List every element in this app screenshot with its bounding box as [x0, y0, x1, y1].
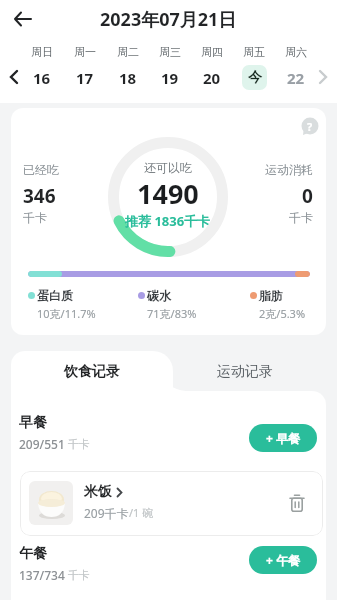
- staticText: 10克/11.7%: [37, 306, 96, 321]
- button[interactable]: 今: [242, 65, 267, 90]
- staticText: 运动记录: [217, 363, 273, 381]
- button[interactable]: 16: [33, 68, 51, 88]
- staticText: ?: [307, 119, 313, 134]
- staticText: 周三: [159, 45, 181, 59]
- staticText: 米饭: [84, 483, 112, 501]
- staticText: 周一: [74, 45, 96, 59]
- staticText: 碳水: [147, 288, 171, 303]
- staticText: 137/734: [19, 567, 65, 583]
- staticText: 运动消耗: [265, 162, 313, 177]
- staticText: 蛋白质: [37, 288, 73, 303]
- button[interactable]: 20: [203, 68, 221, 88]
- staticText: 209千卡: [84, 505, 129, 521]
- button[interactable]: 米饭: [20, 471, 323, 536]
- staticText: 1490: [137, 175, 199, 212]
- staticText: + 早餐: [266, 430, 300, 446]
- button[interactable]: 19: [161, 68, 179, 88]
- staticText: 2克/5.3%: [259, 306, 306, 321]
- button[interactable]: 18: [119, 68, 137, 88]
- staticText: 周五: [243, 45, 265, 59]
- staticText: 已经吃: [23, 162, 59, 177]
- staticText: /1 碗: [129, 505, 154, 520]
- staticText: 周六: [285, 45, 307, 59]
- staticText: 2023年07月21日: [100, 7, 237, 32]
- staticText: 千卡: [65, 436, 90, 451]
- button[interactable]: 22: [287, 68, 305, 88]
- button[interactable]: 17: [76, 68, 94, 88]
- button[interactable]: 运动记录: [185, 351, 305, 392]
- staticText: 346: [23, 183, 56, 209]
- staticText: 周日: [31, 45, 53, 59]
- staticText: 今: [248, 69, 262, 87]
- button[interactable]: + 午餐: [249, 546, 317, 574]
- staticText: 早餐: [19, 414, 47, 432]
- staticText: 209/551: [19, 436, 65, 452]
- staticText: 71克/83%: [147, 306, 197, 321]
- staticText: 千卡: [65, 567, 90, 582]
- staticText: 饮食记录: [64, 363, 120, 381]
- staticText: 午餐: [19, 545, 47, 563]
- button[interactable]: 饮食记录: [11, 351, 173, 392]
- button[interactable]: [289, 494, 305, 513]
- staticText: 周四: [201, 45, 223, 59]
- button[interactable]: [8, 4, 38, 34]
- staticText: 推荐 1836千卡: [125, 212, 211, 230]
- staticText: 周二: [117, 45, 139, 59]
- staticText: + 午餐: [266, 552, 300, 568]
- staticText: 千卡: [23, 210, 47, 225]
- button[interactable]: + 早餐: [249, 424, 317, 452]
- staticText: 0: [302, 183, 313, 209]
- staticText: 千卡: [289, 210, 313, 225]
- staticText: 还可以吃: [144, 160, 192, 175]
- staticText: 脂肪: [259, 288, 283, 303]
